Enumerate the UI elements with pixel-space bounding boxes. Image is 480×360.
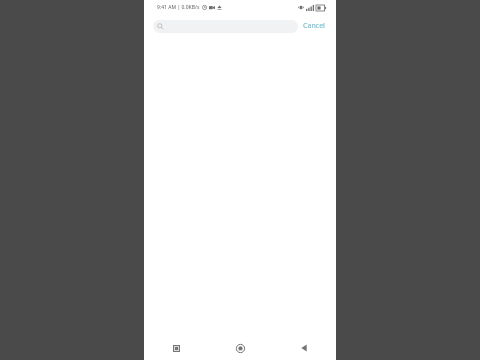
staticText: 9:41 AM | 0.0KB/s — [157, 4, 200, 11]
button[interactable]: Cancel — [298, 18, 330, 34]
button[interactable]: Recents — [144, 336, 208, 360]
button[interactable] — [153, 20, 298, 33]
button[interactable]: Home — [208, 336, 272, 360]
button[interactable]: Back — [272, 336, 336, 360]
staticText: Cancel — [303, 21, 325, 31]
